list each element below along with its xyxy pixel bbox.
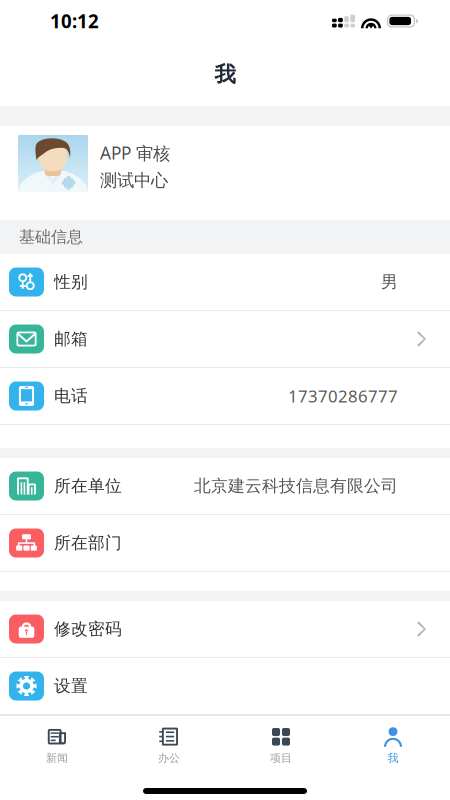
button[interactable]: 新闻 [1, 716, 113, 774]
button[interactable]: 所在单位 [0, 458, 450, 515]
button[interactable]: 项目 [225, 716, 337, 774]
staticText: 邮箱 [54, 328, 88, 349]
staticText: 所在部门 [54, 532, 122, 553]
staticText: 性别 [54, 271, 88, 292]
staticText: 测试中心 [100, 170, 168, 191]
button[interactable]: 设置 [0, 658, 450, 715]
staticText: 设置 [54, 675, 88, 696]
staticText: 办公 [158, 751, 180, 765]
staticText: 基础信息 [19, 227, 83, 247]
staticText: 我 [214, 61, 235, 88]
button[interactable]: 所在部门 [0, 515, 450, 572]
staticText: 新闻 [46, 751, 68, 765]
button[interactable]: APP 审核 [0, 126, 450, 220]
staticText: 项目 [270, 751, 292, 765]
staticText: APP 审核 [100, 141, 170, 165]
staticText: 电话 [54, 385, 88, 406]
staticText: 北京建云科技信息有限公司 [194, 475, 398, 497]
staticText: 所在单位 [54, 475, 122, 496]
button[interactable]: 办公 [113, 716, 225, 774]
button[interactable]: 邮箱 [0, 311, 450, 368]
button[interactable]: 性别 [0, 254, 450, 311]
staticText: 我 [387, 751, 398, 765]
button[interactable]: 修改密码 [0, 601, 450, 658]
button[interactable]: 电话 [0, 368, 450, 425]
staticText: 17370286777 [288, 385, 398, 407]
staticText: 10:12 [50, 8, 99, 34]
button[interactable]: 我 [337, 716, 449, 774]
staticText: 男 [381, 271, 398, 293]
staticText: 修改密码 [54, 618, 122, 639]
